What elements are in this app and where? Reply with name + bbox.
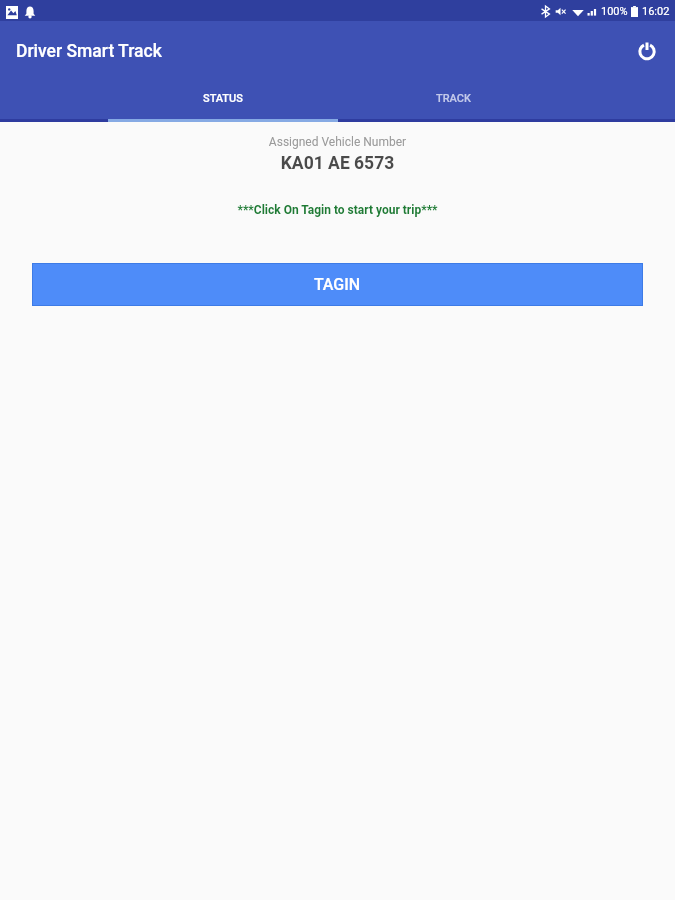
staticText: ***Click On Tagin to start your trip*** xyxy=(0,203,675,217)
button[interactable]: STATUS xyxy=(108,78,338,119)
staticText: 16:02 xyxy=(642,5,670,18)
staticText: KA01 AE 6573 xyxy=(0,153,675,174)
staticText: Driver Smart Track xyxy=(16,41,162,62)
button[interactable]: TAGIN xyxy=(32,263,643,306)
staticText: TAGIN xyxy=(314,275,361,294)
button[interactable]: TRACK xyxy=(338,78,568,119)
button[interactable]: Logout xyxy=(629,32,665,68)
staticText: STATUS xyxy=(203,92,243,105)
staticText: Assigned Vehicle Number xyxy=(0,135,675,149)
staticText: 100% xyxy=(601,5,628,18)
staticText: TRACK xyxy=(436,92,471,105)
